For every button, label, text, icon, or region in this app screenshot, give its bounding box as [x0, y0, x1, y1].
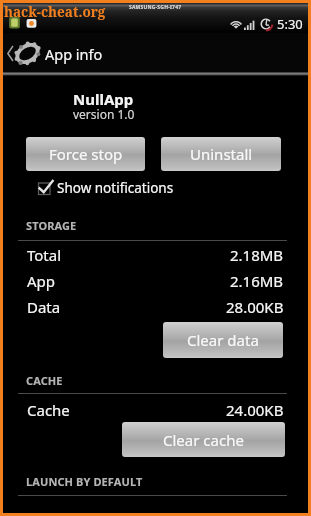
staticText: App info — [45, 44, 103, 64]
staticText: Force stop — [49, 144, 123, 164]
staticText: 2.18MB — [230, 245, 284, 265]
staticText: Cache — [27, 400, 70, 420]
staticText: SAMSUNG-SGH-I747 — [129, 4, 182, 11]
staticText: NullApp — [73, 89, 134, 109]
staticText: Clear data — [187, 330, 259, 350]
button[interactable]: Data — [3, 295, 308, 319]
button[interactable]: Show notifications — [37, 179, 174, 197]
button[interactable]: Force stop — [26, 137, 145, 171]
button[interactable]: Navigate up — [3, 33, 40, 74]
staticText: Uninstall — [190, 144, 253, 164]
button[interactable]: Uninstall — [161, 137, 281, 171]
staticText: Data — [27, 297, 61, 317]
staticText: 2.16MB — [230, 271, 284, 291]
staticText: LAUNCH BY DEFAULT — [26, 474, 143, 489]
staticText: 5:30 — [277, 15, 303, 33]
button[interactable]: App — [3, 269, 308, 293]
staticText: 28.00KB — [226, 297, 284, 317]
staticText: Clear cache — [163, 430, 244, 450]
button[interactable]: Cache — [3, 398, 308, 422]
button[interactable]: Clear data — [163, 322, 283, 358]
staticText: Show notifications — [57, 179, 174, 197]
staticText: Total — [27, 245, 62, 265]
button[interactable]: Clear cache — [122, 422, 285, 457]
staticText: App — [27, 271, 56, 291]
staticText: STORAGE — [26, 218, 77, 233]
staticText: version 1.0 — [73, 106, 135, 122]
staticText: CACHE — [26, 373, 63, 388]
staticText: 24.00KB — [226, 400, 284, 420]
button[interactable]: Total — [3, 243, 308, 267]
staticText: hack-cheat.org — [4, 3, 106, 21]
